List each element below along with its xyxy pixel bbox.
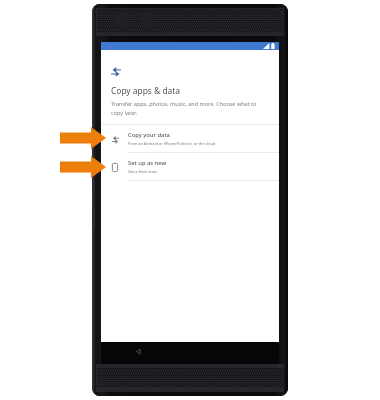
staticText: Set up as new: [128, 159, 167, 167]
staticText: Get a fresh start.: [128, 169, 158, 174]
button[interactable]: Back: [134, 347, 143, 356]
staticText: From an Android or iPhone® device, or th…: [128, 141, 216, 146]
button[interactable]: Copy your data: [101, 125, 279, 152]
button[interactable]: Set up as new: [101, 153, 279, 180]
staticText: Copy your data: [128, 131, 170, 139]
staticText: Copy apps & data: [111, 85, 180, 96]
staticText: Transfer apps, photos, music, and more. …: [111, 100, 269, 116]
